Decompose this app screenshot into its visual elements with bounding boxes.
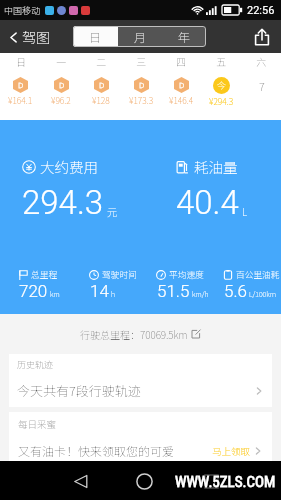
staticText: 驾图 xyxy=(22,27,50,47)
staticText: D xyxy=(59,79,65,91)
button[interactable]: 驾图 xyxy=(5,23,52,51)
button[interactable]: 五 xyxy=(201,53,241,120)
staticText: L xyxy=(242,204,248,218)
staticText: 今天共有7段行驶轨迹 xyxy=(17,381,141,400)
staticText: D xyxy=(99,79,105,91)
button[interactable]: Share xyxy=(247,22,277,52)
staticText: 40.4 xyxy=(176,183,239,222)
button[interactable]: 年 xyxy=(162,26,206,47)
button[interactable]: 六 xyxy=(241,53,281,120)
staticText: ¥164.1 xyxy=(8,94,33,106)
staticText: 六 xyxy=(256,54,266,68)
staticText: 元 xyxy=(107,204,117,218)
staticText: L/100km xyxy=(249,289,276,299)
button[interactable]: 行驶总里程：70069.5km xyxy=(76,323,205,345)
staticText: WWW.5ZLS.COM xyxy=(175,473,276,491)
button[interactable]: 二 xyxy=(81,53,121,120)
staticText: 14 xyxy=(90,281,109,301)
staticText: 7 xyxy=(259,78,265,94)
staticText: D xyxy=(139,79,145,91)
button[interactable]: Recents xyxy=(196,466,226,496)
staticText: 总里程 xyxy=(31,268,58,281)
staticText: 中国移动 xyxy=(4,4,41,17)
button[interactable]: 日 xyxy=(73,26,118,47)
staticText: 驾驶时间 xyxy=(102,268,137,281)
staticText: h xyxy=(111,289,116,299)
button[interactable]: 日 xyxy=(0,53,41,120)
staticText: 294.3 xyxy=(22,183,104,222)
staticText: 耗油量 xyxy=(194,156,238,177)
staticText: 51.5 xyxy=(157,281,190,301)
staticText: km/h xyxy=(192,289,209,299)
staticText: 22:56 xyxy=(247,4,275,17)
staticText: ¥146.4 xyxy=(169,94,194,106)
staticText: 马上领取 xyxy=(212,444,251,458)
staticText: 一 xyxy=(56,54,66,68)
staticText: km xyxy=(50,289,60,299)
button[interactable]: 今天共有7段行驶轨迹 xyxy=(9,374,272,407)
button[interactable]: Back xyxy=(65,466,95,496)
staticText: 平均速度 xyxy=(169,268,204,281)
button[interactable]: 月 xyxy=(118,26,162,47)
staticText: 又有油卡！快来领取您的可爱 xyxy=(18,442,175,459)
staticText: 年 xyxy=(178,28,191,45)
button[interactable]: 三 xyxy=(121,53,161,120)
staticText: 大约费用 xyxy=(40,156,98,177)
staticText: 日 xyxy=(16,54,26,68)
button[interactable]: Home xyxy=(129,466,159,496)
staticText: 5.6 xyxy=(224,281,247,301)
button[interactable]: 又有油卡！快来领取您的可爱 xyxy=(9,442,272,459)
staticText: 日 xyxy=(89,28,102,45)
button[interactable]: 四 xyxy=(161,53,201,120)
staticText: D xyxy=(18,79,24,91)
staticText: ¥128 xyxy=(92,94,110,106)
staticText: ¥173.3 xyxy=(129,94,154,106)
staticText: D xyxy=(179,79,185,91)
staticText: 四 xyxy=(176,54,186,68)
staticText: 三 xyxy=(136,54,146,68)
staticText: 历史轨迹 xyxy=(17,358,54,371)
staticText: 每日采蜜 xyxy=(18,417,57,431)
staticText: 720 xyxy=(19,281,48,301)
staticText: 今 xyxy=(217,79,227,92)
button[interactable]: 一 xyxy=(41,53,81,120)
staticText: 二 xyxy=(96,54,106,68)
staticText: ¥294.3 xyxy=(209,95,234,107)
staticText: 百公里油耗 xyxy=(236,268,280,281)
staticText: 月 xyxy=(134,28,147,45)
staticText: ¥96.2 xyxy=(51,94,71,106)
staticText: 行驶总里程：70069.5km xyxy=(80,327,188,341)
staticText: 五 xyxy=(216,54,226,68)
